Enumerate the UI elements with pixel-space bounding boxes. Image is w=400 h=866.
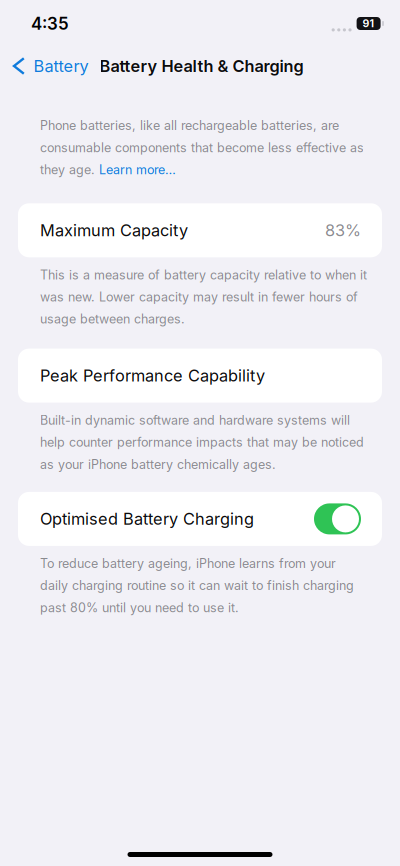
staticText: Peak Performance Capability (40, 366, 265, 385)
staticText: Built-in dynamic software and hardware s… (40, 413, 364, 472)
button[interactable]: Battery (0, 44, 95, 88)
staticText: 83% (325, 220, 361, 240)
staticText: This is a measure of battery capacity re… (40, 267, 367, 327)
staticText: Maximum Capacity (40, 220, 188, 240)
staticText: Optimised Battery Charging (40, 509, 254, 529)
staticText: Phone batteries, like all rechargeable b… (40, 118, 364, 177)
button[interactable]: Maximum Capacity (0, 203, 400, 257)
staticText: 91 (363, 17, 375, 30)
staticText: 4:35 (31, 13, 69, 34)
staticText: Battery (34, 56, 89, 76)
staticText: To reduce battery ageing, iPhone learns … (40, 556, 354, 615)
button[interactable]: Optimised Battery Charging (0, 492, 400, 546)
staticText: Battery Health & Charging (100, 56, 304, 76)
button[interactable]: Peak Performance Capability (0, 349, 400, 403)
